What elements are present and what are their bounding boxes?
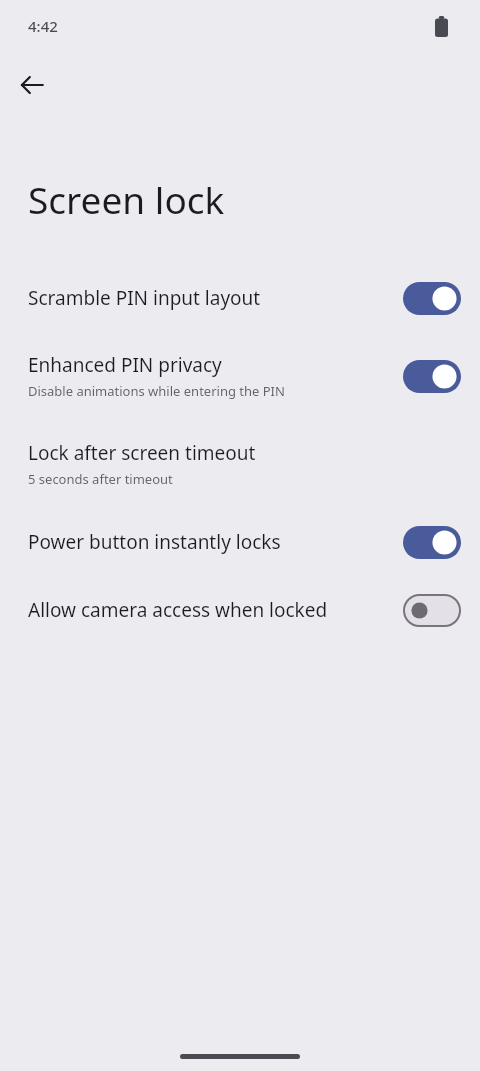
button[interactable]: On: [403, 282, 461, 315]
button[interactable]: Power button instantly locks: [0, 508, 480, 576]
staticText: Enhanced PIN privacy: [28, 352, 222, 378]
button[interactable]: Off: [403, 594, 461, 627]
button[interactable]: Enhanced PIN privacy: [0, 332, 480, 420]
staticText: Lock after screen timeout: [28, 440, 256, 466]
button[interactable]: Allow camera access when locked: [0, 576, 480, 644]
staticText: Allow camera access when locked: [28, 597, 328, 623]
button[interactable]: Lock after screen timeout: [0, 420, 480, 508]
staticText: 4:42: [28, 16, 58, 36]
button[interactable]: On: [403, 360, 461, 393]
button[interactable]: Scramble PIN input layout: [0, 264, 480, 332]
button[interactable]: Back: [8, 61, 56, 109]
staticText: Power button instantly locks: [28, 529, 281, 555]
staticText: Disable animations while entering the PI…: [28, 382, 285, 400]
staticText: Scramble PIN input layout: [28, 285, 261, 311]
button[interactable]: On: [403, 526, 461, 559]
staticText: 5 seconds after timeout: [28, 470, 173, 488]
staticText: Screen lock: [28, 174, 225, 224]
